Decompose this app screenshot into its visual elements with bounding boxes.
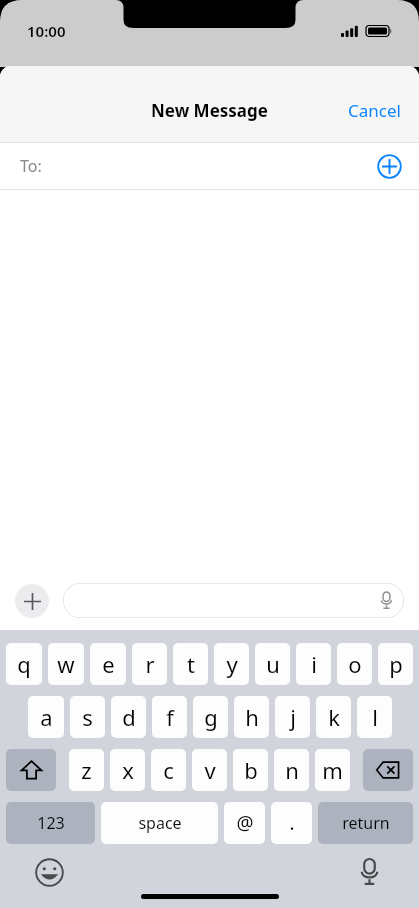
staticText: u (266, 649, 280, 679)
staticText: x (122, 755, 134, 785)
staticText: m (322, 755, 343, 785)
staticText: n (285, 755, 299, 785)
staticText: 10:00 (27, 21, 66, 41)
button[interactable]: r (132, 643, 167, 685)
staticText: Cancel (348, 99, 401, 122)
staticText: To: (20, 155, 42, 177)
staticText: b (244, 755, 258, 785)
button[interactable]: k (316, 696, 351, 738)
staticText: New Message (151, 99, 268, 122)
staticText: r (145, 649, 155, 679)
button[interactable]: p (378, 643, 413, 685)
button[interactable]: @ (224, 802, 265, 844)
staticText: a (40, 702, 53, 732)
staticText: p (389, 649, 403, 679)
staticText: t (187, 649, 195, 679)
button[interactable]: Cancel (330, 91, 419, 130)
button[interactable]: s (70, 696, 105, 738)
button[interactable]: x (110, 749, 145, 791)
button[interactable]: a (28, 696, 64, 738)
staticText: d (122, 702, 136, 732)
staticText: return (342, 812, 390, 834)
button[interactable]: m (315, 749, 350, 791)
button[interactable]: z (69, 749, 104, 791)
staticText: j (290, 702, 296, 732)
button[interactable]: n (274, 749, 309, 791)
staticText: @ (236, 810, 254, 836)
staticText: s (82, 702, 93, 732)
button[interactable]: t (173, 643, 208, 685)
button[interactable]: g (193, 696, 228, 738)
button[interactable]: j (275, 696, 310, 738)
staticText: 123 (37, 812, 65, 834)
staticText: e (102, 649, 115, 679)
staticText: z (81, 755, 92, 785)
button[interactable]: i (296, 643, 331, 685)
staticText: o (348, 649, 362, 679)
button[interactable]: Dictation (352, 855, 386, 889)
button[interactable]: y (214, 643, 249, 685)
button[interactable]: c (151, 749, 186, 791)
button[interactable]: Shift (6, 749, 56, 791)
button[interactable]: Emoji (32, 855, 66, 889)
staticText: . (289, 810, 295, 836)
staticText: w (57, 649, 75, 679)
button[interactable]: To: (0, 143, 419, 189)
button[interactable]: e (90, 643, 126, 685)
button[interactable]: d (111, 696, 146, 738)
button[interactable]: h (234, 696, 269, 738)
staticText: l (372, 702, 378, 732)
staticText: y (226, 649, 238, 679)
button[interactable]: Add contact (374, 151, 404, 181)
staticText: i (311, 649, 317, 679)
button[interactable]: space (101, 802, 218, 844)
button[interactable]: v (192, 749, 227, 791)
button[interactable]: b (233, 749, 268, 791)
staticText: space (138, 812, 182, 834)
staticText: v (204, 755, 216, 785)
staticText: f (166, 702, 174, 732)
staticText: g (204, 702, 218, 732)
staticText: k (328, 702, 340, 732)
button[interactable]: w (48, 643, 84, 685)
button[interactable]: f (152, 696, 187, 738)
button[interactable]: o (337, 643, 372, 685)
button[interactable]: Backspace (363, 749, 413, 791)
button[interactable]: return (318, 802, 413, 844)
button[interactable]: q (6, 643, 42, 685)
staticText: h (245, 702, 259, 732)
button[interactable]: l (357, 696, 392, 738)
button[interactable]: Add attachment (15, 584, 49, 618)
button[interactable]: 123 (6, 802, 95, 844)
button[interactable]: . (271, 802, 312, 844)
staticText: q (17, 649, 31, 679)
staticText: c (163, 755, 174, 785)
button[interactable]: u (255, 643, 290, 685)
button[interactable] (63, 583, 404, 618)
